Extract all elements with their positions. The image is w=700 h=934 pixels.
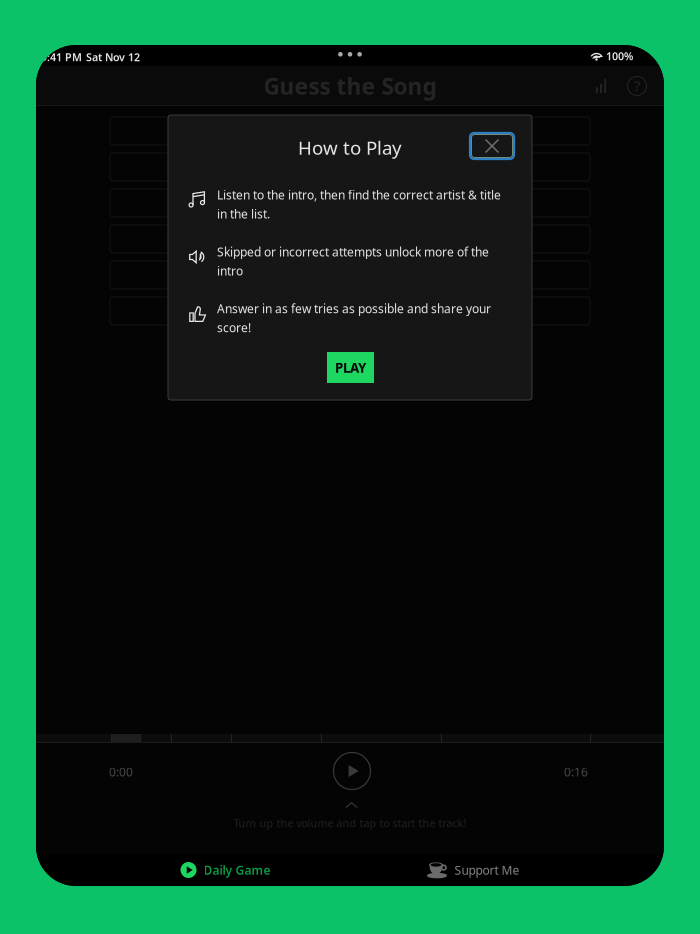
button[interactable]: Support Me: [418, 854, 527, 886]
staticText: Support Me: [454, 862, 519, 878]
staticText: 0:00: [109, 764, 133, 780]
staticText: in the list.: [217, 206, 270, 222]
staticText: How to Play: [298, 135, 402, 160]
button[interactable]: Play: [326, 745, 378, 797]
staticText: 100%: [606, 49, 633, 63]
staticText: ?: [634, 76, 640, 95]
button[interactable]: PLAY: [327, 352, 374, 383]
staticText: Turn up the volume and tap to start the …: [233, 816, 466, 830]
staticText: Sat Nov 12: [86, 50, 140, 64]
staticText: score!: [217, 320, 251, 336]
button[interactable]: Daily Game: [172, 854, 278, 886]
button[interactable]: Statistics: [583, 66, 619, 106]
staticText: Listen to the intro, then find the corre…: [217, 187, 501, 203]
staticText: PLAY: [335, 359, 366, 376]
staticText: 9:41 PM: [41, 50, 82, 64]
staticText: 0:16: [564, 764, 588, 780]
staticText: Guess the Song: [263, 71, 436, 101]
staticText: Daily Game: [203, 862, 270, 878]
staticText: Skipped or incorrect attempts unlock mor…: [217, 244, 489, 260]
staticText: intro: [217, 263, 243, 279]
button[interactable]: Close: [468, 131, 516, 161]
button[interactable]: How to play: [619, 66, 655, 106]
staticText: Answer in as few tries as possible and s…: [217, 301, 491, 317]
